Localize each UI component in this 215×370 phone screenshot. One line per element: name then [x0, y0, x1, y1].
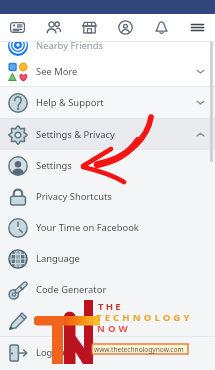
- staticText: Log Out: [36, 346, 215, 359]
- staticText: Settings: [36, 159, 215, 172]
- button[interactable]: Nearby Friends: [0, 42, 215, 61]
- button[interactable]: Friends: [35, 14, 71, 41]
- button[interactable]: Edit Shortcuts: [0, 305, 215, 336]
- button[interactable]: Settings & Privacy: [0, 119, 215, 150]
- staticText: Privacy Shortcuts: [36, 190, 215, 203]
- button[interactable]: Log Out: [0, 337, 215, 368]
- staticText: Nearby Friends: [36, 42, 215, 52]
- staticText: Settings & Privacy: [36, 128, 185, 141]
- button[interactable]: Marketplace: [71, 14, 107, 41]
- button[interactable]: See More: [0, 56, 215, 86]
- button[interactable]: Your Time on Facebook: [0, 212, 215, 243]
- button[interactable]: Code Generator: [0, 274, 215, 305]
- button[interactable]: Settings: [0, 150, 215, 181]
- staticText: Code Generator: [36, 283, 215, 296]
- staticText: THE: [98, 300, 123, 313]
- staticText: Your Time on Facebook: [36, 221, 215, 234]
- button[interactable]: Notifications: [143, 14, 179, 41]
- button[interactable]: Profile: [107, 14, 143, 41]
- button[interactable]: Menu: [179, 14, 215, 41]
- button[interactable]: Privacy Shortcuts: [0, 181, 215, 212]
- button[interactable]: News Feed: [0, 14, 35, 41]
- button[interactable]: Help & Support: [0, 87, 215, 118]
- staticText: NOW: [97, 322, 131, 335]
- staticText: See More: [36, 65, 185, 78]
- staticText: TECHNOLOGY: [96, 311, 193, 324]
- staticText: Edit Shortcuts: [36, 314, 215, 327]
- staticText: www.thetechnologynow.com: [94, 345, 184, 354]
- staticText: Language: [36, 252, 215, 265]
- button[interactable]: Language: [0, 243, 215, 274]
- staticText: Help & Support: [36, 96, 185, 109]
